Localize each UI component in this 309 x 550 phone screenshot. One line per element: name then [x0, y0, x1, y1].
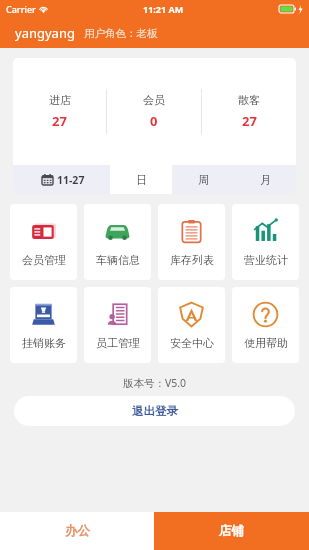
button[interactable]: 日	[110, 165, 172, 194]
button[interactable]: 退出登录	[14, 396, 295, 426]
staticText: 库存列表	[170, 253, 214, 267]
staticText: 安全中心	[170, 336, 214, 350]
button[interactable]: 办公	[0, 512, 154, 550]
staticText: Carrier	[6, 3, 36, 15]
staticText: 27	[52, 112, 67, 130]
staticText: 27	[242, 112, 257, 130]
button[interactable]: 员工管理	[84, 287, 151, 363]
staticText: 散客	[238, 93, 260, 107]
button[interactable]: 店铺	[154, 512, 309, 550]
staticText: 使用帮助	[244, 336, 288, 350]
staticText: 办公	[65, 523, 90, 539]
staticText: 会员管理	[22, 253, 66, 267]
button[interactable]: 使用帮助	[232, 287, 299, 363]
staticText: 会员	[143, 93, 165, 107]
button[interactable]: 车辆信息	[84, 204, 151, 280]
staticText: yangyang	[15, 24, 75, 42]
staticText: 0	[150, 112, 158, 130]
button[interactable]: 挂销账务	[10, 287, 77, 363]
button[interactable]: 安全中心	[158, 287, 225, 363]
staticText: 营业统计	[244, 253, 288, 267]
button[interactable]: 11-27	[13, 165, 110, 194]
staticText: 员工管理	[96, 336, 140, 350]
staticText: 进店	[49, 93, 71, 107]
button[interactable]: 库存列表	[158, 204, 225, 280]
staticText: 11:21 AM	[143, 3, 184, 15]
button[interactable]: 会员管理	[10, 204, 77, 280]
staticText: 用户角色：老板	[84, 27, 158, 40]
button[interactable]: 营业统计	[232, 204, 299, 280]
button[interactable]: 周	[172, 165, 234, 194]
staticText: 挂销账务	[22, 336, 66, 350]
staticText: 日	[136, 173, 147, 187]
button[interactable]: 月	[234, 165, 296, 194]
staticText: 月	[260, 173, 271, 187]
staticText: 店铺	[219, 523, 244, 539]
staticText: 11-27	[57, 173, 85, 187]
staticText: 车辆信息	[96, 253, 140, 267]
staticText: 退出登录	[132, 404, 178, 418]
staticText: 版本号：V5.0	[0, 376, 309, 390]
staticText: 周	[198, 173, 209, 187]
